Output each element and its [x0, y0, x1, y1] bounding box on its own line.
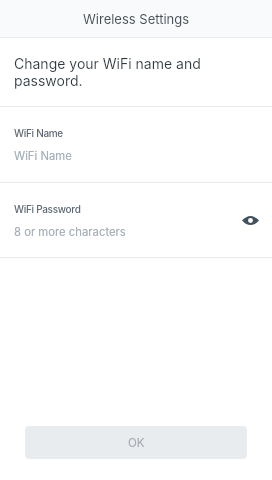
button[interactable]: WiFi Name	[0, 107, 272, 182]
staticText: WiFi Password	[14, 203, 81, 215]
staticText: OK	[128, 436, 145, 450]
staticText: Wireless Settings	[83, 11, 190, 27]
staticText: WiFi Name	[14, 149, 72, 163]
button[interactable]: OK	[25, 426, 247, 459]
staticText: Change your WiFi name and password.	[14, 55, 201, 89]
staticText: WiFi Name	[14, 127, 63, 139]
staticText: 8 or more characters	[14, 225, 126, 239]
button[interactable]: Show password	[234, 204, 266, 236]
button[interactable]: WiFi Password	[0, 183, 272, 257]
